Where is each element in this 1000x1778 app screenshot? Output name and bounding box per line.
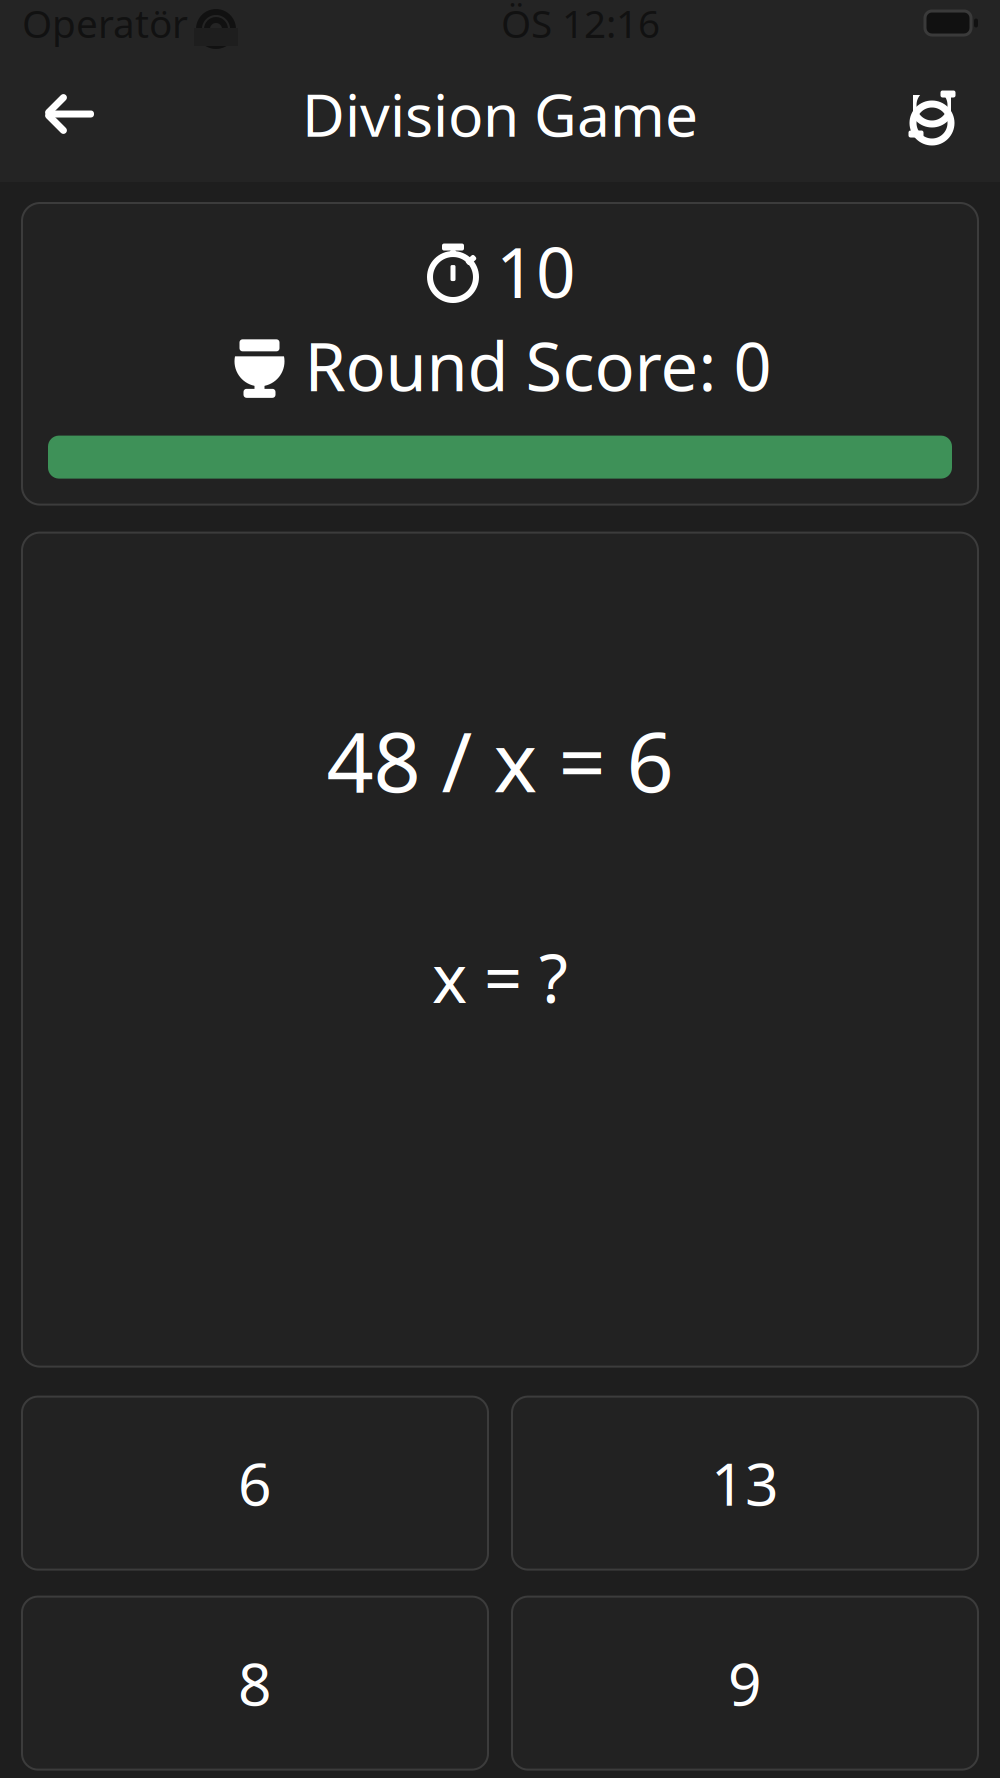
staticText: 10	[496, 225, 576, 317]
staticText: 6	[238, 1444, 272, 1522]
staticText: 48 / x = 6	[326, 705, 673, 815]
staticText: Division Game	[302, 75, 698, 153]
staticText: Operatör	[22, 0, 188, 49]
button[interactable]: 9	[512, 1597, 978, 1770]
button[interactable]: Back	[20, 78, 116, 150]
staticText: x = ?	[432, 933, 568, 1021]
button[interactable]: Restart	[884, 78, 980, 150]
staticText: ÖS 12:16	[501, 0, 660, 49]
staticText: 9	[728, 1644, 762, 1722]
staticText: 13	[711, 1444, 779, 1522]
button[interactable]: 8	[22, 1597, 488, 1770]
button[interactable]: 13	[512, 1397, 978, 1570]
staticText: Round Score: 0	[304, 321, 771, 410]
staticText: 8	[238, 1644, 272, 1722]
button[interactable]: 6	[22, 1397, 488, 1570]
